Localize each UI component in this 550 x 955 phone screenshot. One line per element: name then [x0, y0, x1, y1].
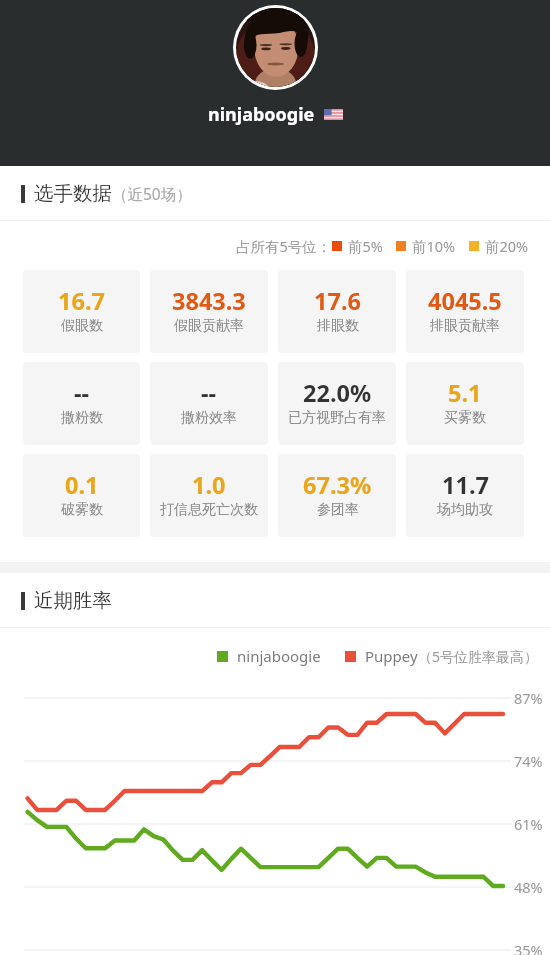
staticText: 占所有5号位：: [236, 236, 332, 256]
staticText: 假眼数: [61, 317, 103, 335]
button[interactable]: 前5%: [332, 236, 383, 256]
button[interactable]: 16.7: [23, 270, 140, 353]
button[interactable]: 前10%: [396, 236, 456, 256]
staticText: 场均助攻: [437, 501, 493, 519]
staticText: 22.0%: [303, 377, 372, 409]
staticText: --: [74, 377, 90, 409]
button[interactable]: 5.1: [406, 362, 524, 445]
button[interactable]: --: [23, 362, 140, 445]
staticText: 破雾数: [61, 501, 103, 519]
staticText: 参团率: [317, 501, 359, 519]
button[interactable]: 17.6: [278, 270, 396, 353]
button[interactable]: 选手数据: [0, 166, 550, 221]
button[interactable]: 67.3%: [278, 454, 396, 537]
button[interactable]: --: [150, 362, 268, 445]
staticText: 5.1: [448, 377, 482, 409]
staticText: 撒粉效率: [181, 409, 237, 427]
staticText: 选手数据: [34, 181, 112, 206]
button[interactable]: 3843.3: [150, 270, 268, 353]
staticText: 打信息死亡次数: [160, 501, 258, 519]
staticText: 1.0: [192, 469, 226, 501]
staticText: 48%: [514, 877, 543, 897]
staticText: 买雾数: [444, 409, 486, 427]
button[interactable]: 0.1: [23, 454, 140, 537]
button[interactable]: Player avatar: [233, 5, 318, 90]
staticText: （近50场）: [112, 183, 192, 204]
staticText: 3843.3: [172, 285, 246, 317]
staticText: 87%: [514, 688, 543, 708]
staticText: 16.7: [58, 285, 105, 317]
staticText: 前5%: [348, 236, 383, 256]
staticText: 61%: [514, 814, 543, 834]
staticText: ninjaboogie: [208, 102, 315, 127]
staticText: 排眼数: [317, 317, 359, 335]
staticText: 假眼贡献率: [174, 317, 244, 335]
staticText: 74%: [514, 751, 543, 771]
staticText: 排眼贡献率: [430, 317, 500, 335]
button[interactable]: 11.7: [406, 454, 524, 537]
staticText: 近期胜率: [34, 588, 112, 613]
button[interactable]: 近期胜率: [0, 573, 550, 628]
button[interactable]: 前20%: [469, 236, 529, 256]
staticText: 35%: [514, 940, 543, 955]
staticText: 0.1: [65, 469, 99, 501]
staticText: --: [201, 377, 217, 409]
button[interactable]: 22.0%: [278, 362, 396, 445]
button[interactable]: 1.0: [150, 454, 268, 537]
staticText: 前20%: [485, 236, 529, 256]
staticText: 11.7: [442, 469, 489, 501]
staticText: 已方视野占有率: [288, 409, 386, 427]
staticText: 4045.5: [428, 285, 502, 317]
staticText: Puppey: [365, 646, 418, 666]
staticText: 67.3%: [303, 469, 372, 501]
staticText: ninjaboogie: [237, 646, 321, 666]
staticText: 撒粉数: [61, 409, 103, 427]
staticText: （5号位胜率最高）: [418, 647, 539, 666]
staticText: 前10%: [412, 236, 456, 256]
button[interactable]: 4045.5: [406, 270, 524, 353]
staticText: 17.6: [314, 285, 361, 317]
